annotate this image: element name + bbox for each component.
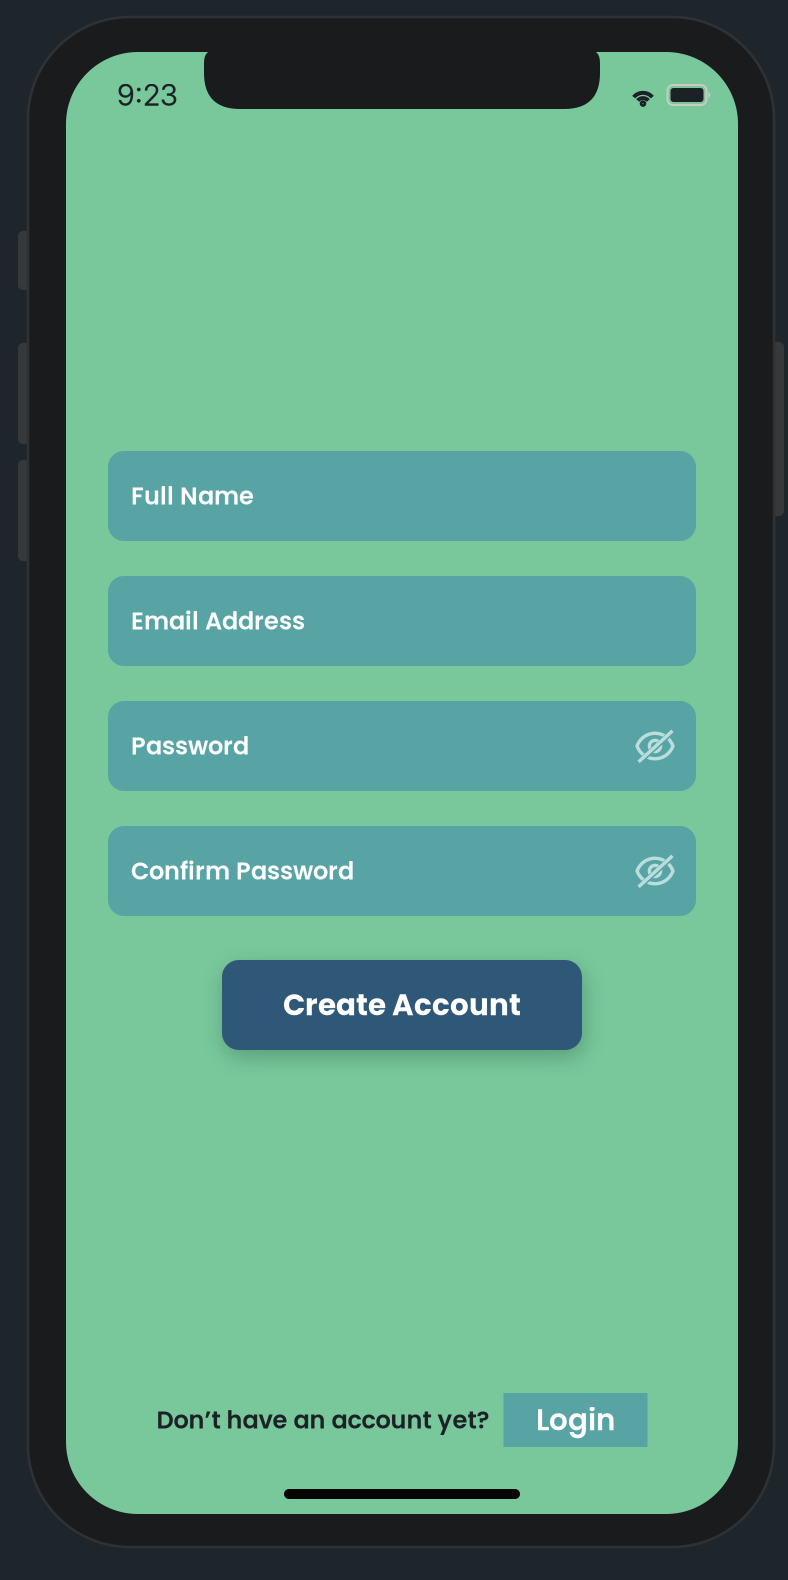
staticText: Login	[536, 1399, 615, 1441]
staticText: Don’t have an account yet?	[156, 1403, 489, 1437]
button[interactable]: Login	[503, 1393, 647, 1447]
staticText: Create Account	[283, 984, 521, 1026]
button[interactable]: Password	[108, 701, 696, 791]
button[interactable]: Create Account	[222, 960, 582, 1050]
button[interactable]: Confirm Password	[108, 826, 696, 916]
staticText: Password	[131, 729, 249, 763]
button[interactable]: Email Address	[108, 576, 696, 666]
staticText: 9:23	[117, 77, 178, 113]
staticText: Full Name	[131, 479, 254, 513]
staticText: Confirm Password	[131, 854, 354, 888]
button[interactable]: Full Name	[108, 451, 696, 541]
staticText: Email Address	[131, 604, 305, 638]
